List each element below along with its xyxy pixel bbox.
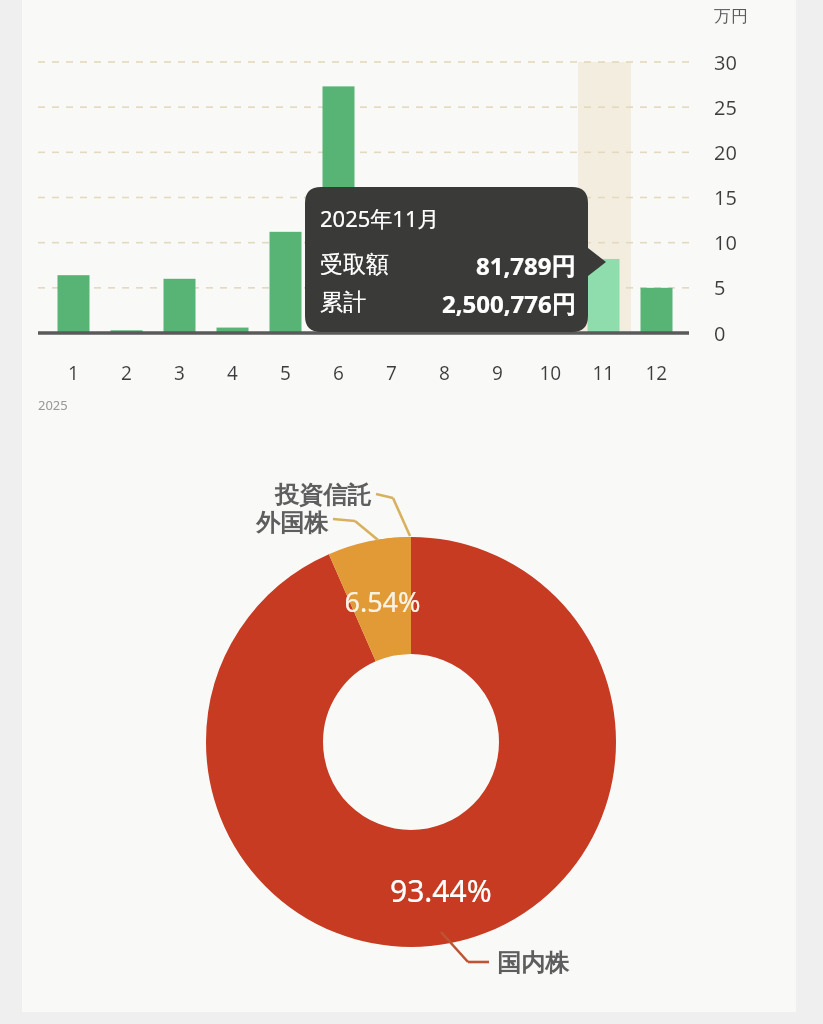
button[interactable]: Dividend chart screen	[0, 0, 823, 1024]
